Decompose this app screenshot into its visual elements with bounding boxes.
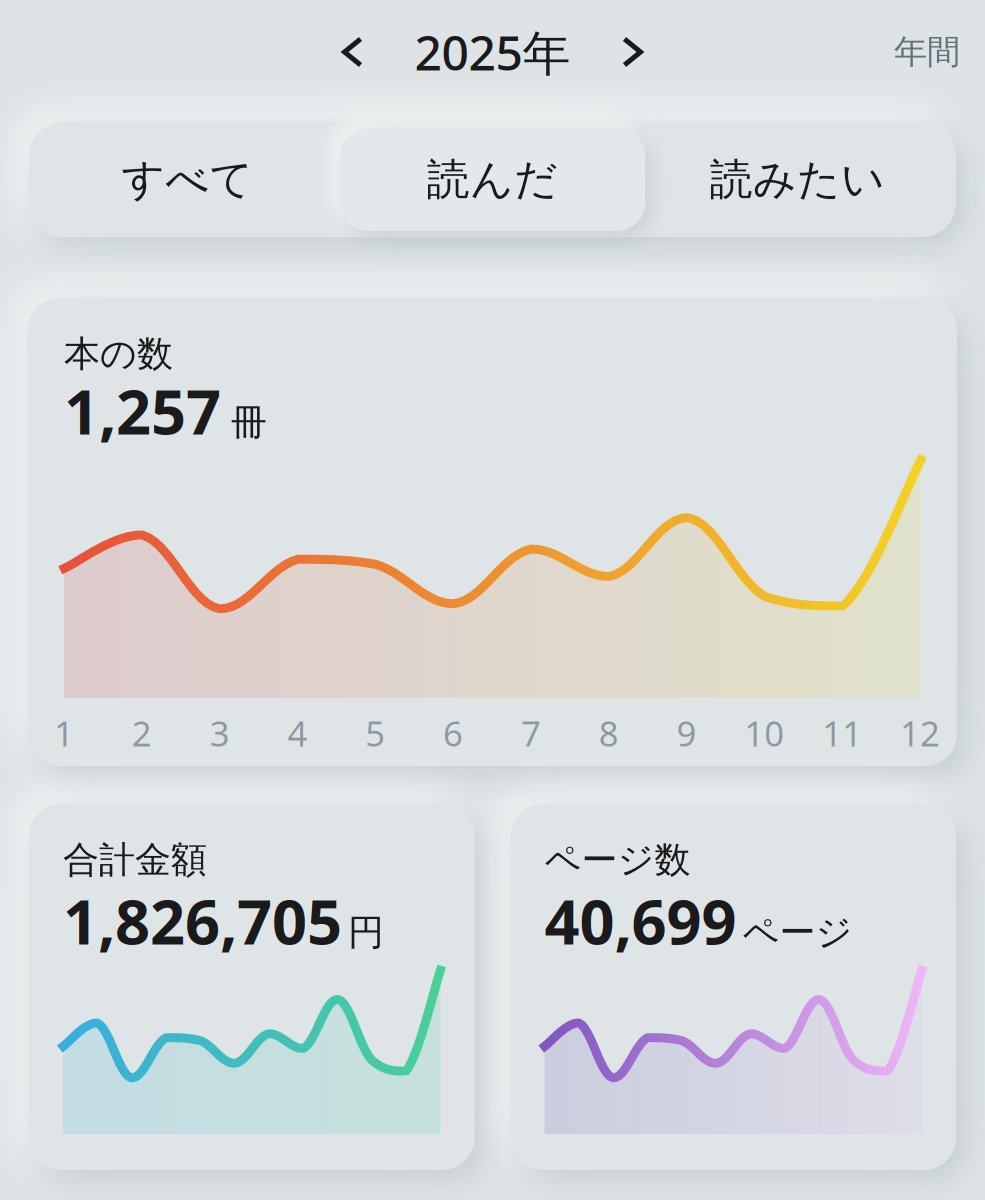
staticText: 2	[132, 710, 152, 756]
staticText: 1,826,705	[63, 880, 342, 961]
staticText: 12	[900, 710, 940, 756]
button[interactable]: 読んだ	[340, 128, 645, 231]
button[interactable]: 年間	[869, 15, 985, 88]
staticText: すべて	[121, 153, 253, 206]
staticText: 3	[210, 710, 230, 756]
staticText: 読んだ	[427, 153, 558, 206]
button[interactable]: Next year	[600, 17, 664, 87]
staticText: 40,699	[544, 880, 736, 961]
staticText: 8	[599, 710, 619, 756]
staticText: 読みたい	[710, 153, 885, 206]
staticText: 5	[365, 710, 385, 756]
staticText: 年間	[894, 31, 960, 72]
staticText: 1,257	[64, 370, 221, 451]
staticText: ページ	[742, 910, 852, 955]
staticText: 9	[676, 710, 696, 756]
button[interactable]: 読みたい	[645, 128, 950, 231]
button[interactable]: すべて	[35, 128, 340, 231]
staticText: 4	[287, 710, 307, 756]
staticText: 11	[822, 710, 862, 756]
staticText: 10	[744, 710, 784, 756]
staticText: 円	[348, 910, 384, 955]
staticText: 7	[521, 710, 541, 756]
staticText: 1	[54, 710, 74, 756]
staticText: 2025年	[414, 20, 570, 84]
button[interactable]: Previous year	[320, 17, 384, 87]
staticText: 6	[443, 710, 463, 756]
staticText: 合計金額	[63, 838, 207, 882]
staticText: 本の数	[64, 332, 173, 376]
staticText: ページ数	[544, 838, 690, 882]
staticText: 冊	[231, 400, 267, 445]
